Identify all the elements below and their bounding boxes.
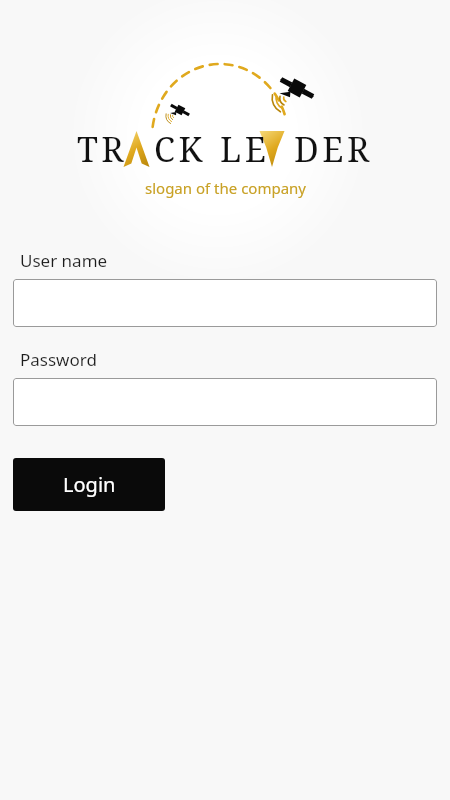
- staticText: slogan of the company: [145, 178, 306, 198]
- staticText: Login: [63, 471, 116, 498]
- button[interactable]: [13, 279, 437, 327]
- staticText: LE: [220, 126, 270, 172]
- staticText: TR: [77, 126, 128, 172]
- staticText: DER: [294, 126, 373, 172]
- staticText: User name: [20, 249, 108, 272]
- button[interactable]: Login: [13, 458, 165, 511]
- button[interactable]: [13, 378, 437, 426]
- staticText: Password: [20, 348, 97, 371]
- staticText: CK: [154, 126, 206, 172]
